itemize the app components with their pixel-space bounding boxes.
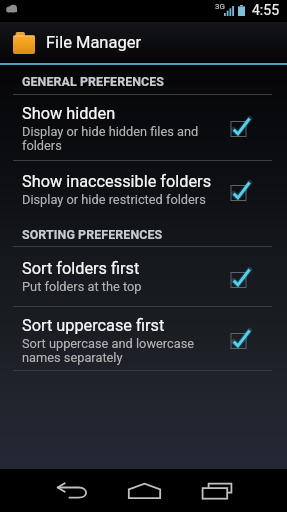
staticText: 4:55	[252, 2, 279, 18]
button[interactable]: Back	[48, 469, 96, 512]
staticText: SORTING PREFERENCES	[22, 227, 163, 242]
staticText: GENERAL PREFERENCES	[22, 74, 165, 89]
button[interactable]: Show inaccessible folders	[0, 161, 287, 219]
staticText: File Manager	[46, 33, 142, 52]
staticText: 3G	[215, 2, 225, 11]
button[interactable]: File Manager	[0, 22, 287, 63]
staticText: Sort folders first	[22, 259, 140, 278]
button[interactable]: Show hidden	[0, 95, 287, 161]
staticText: Sort uppercase and lowercase names separ…	[22, 336, 195, 365]
staticText: Show inaccessible folders	[22, 172, 212, 191]
staticText: Display or hide restricted folders	[22, 192, 206, 207]
staticText: Put folders at the top	[22, 279, 142, 294]
button[interactable]: Sort uppercase first	[0, 307, 287, 371]
button[interactable]: Sort folders first	[0, 247, 287, 307]
staticText: Show hidden	[22, 104, 116, 123]
button[interactable]: Recent apps	[193, 469, 241, 512]
staticText: Sort uppercase first	[22, 316, 165, 335]
button[interactable]: Home	[120, 469, 168, 512]
staticText: Display or hide hidden files and folders	[22, 124, 199, 153]
